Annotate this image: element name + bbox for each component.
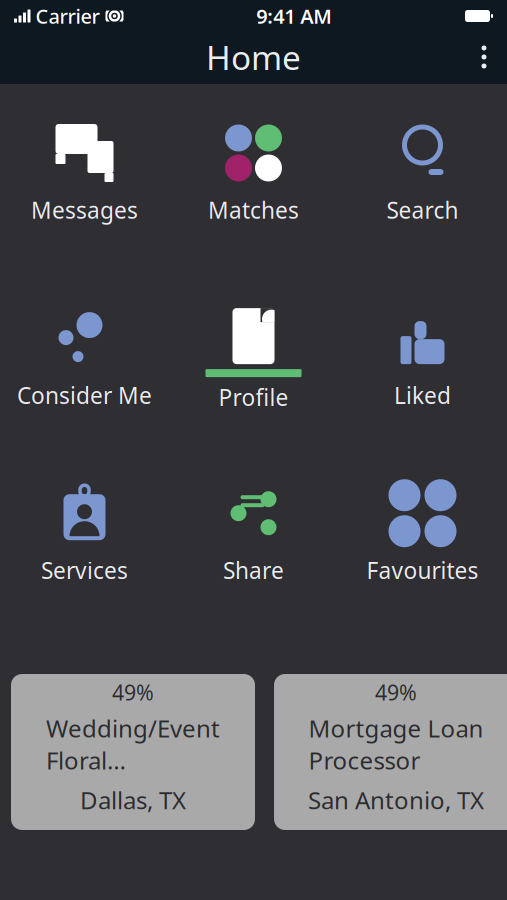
staticText: Wedding/Event Floral… [46, 712, 220, 776]
button[interactable]: Favourites [338, 478, 507, 589]
staticText: Dallas, TX [80, 784, 186, 816]
staticText: Home [206, 35, 301, 79]
staticText: 49% [112, 678, 154, 706]
staticText: 9:41 AM [256, 3, 332, 29]
button[interactable]: More options [461, 31, 507, 83]
staticText: Consider Me [17, 380, 152, 410]
staticText: Matches [208, 195, 299, 225]
staticText: San Antonio, TX [308, 784, 484, 816]
button[interactable]: Consider Me [0, 303, 169, 414]
button[interactable]: 49% [11, 674, 255, 830]
button[interactable]: Search [338, 118, 507, 229]
staticText: Mortgage Loan Processor [308, 712, 483, 776]
button[interactable]: Profile [169, 301, 338, 416]
staticText: Liked [394, 380, 451, 410]
button[interactable]: Messages [0, 118, 169, 229]
button[interactable]: Share [169, 478, 338, 589]
button[interactable]: 49% [274, 674, 507, 830]
staticText: Share [223, 555, 284, 585]
button[interactable]: Matches [169, 118, 338, 229]
staticText: Favourites [366, 555, 478, 585]
staticText: 49% [375, 678, 417, 706]
button[interactable]: Liked [338, 303, 507, 414]
staticText: Profile [218, 382, 288, 412]
staticText: Carrier [35, 3, 99, 29]
staticText: Services [41, 555, 128, 585]
staticText: Messages [31, 195, 138, 225]
button[interactable]: Services [0, 478, 169, 589]
staticText: Search [386, 195, 458, 225]
